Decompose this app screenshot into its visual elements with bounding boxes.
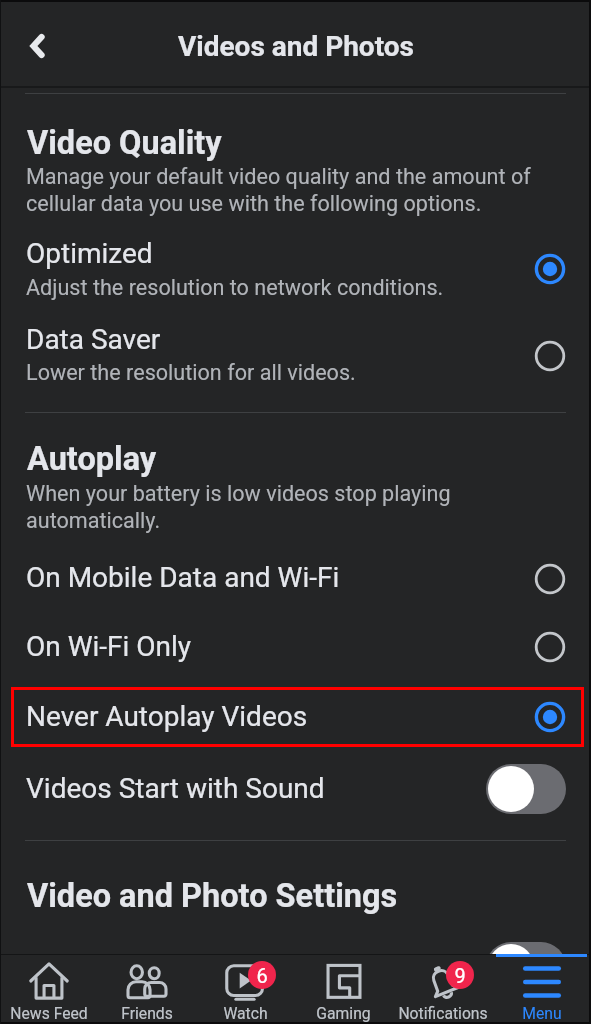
staticText: Videos and Photos <box>178 30 414 63</box>
staticText: 6 <box>256 964 268 987</box>
staticText: Video Quality <box>27 124 222 162</box>
button[interactable]: Option <box>533 562 567 596</box>
staticText: Lower the resolution for all videos. <box>26 360 356 385</box>
staticText: Optimized <box>26 237 153 270</box>
staticText: 9 <box>454 964 466 987</box>
staticText: Gaming <box>316 1004 371 1022</box>
staticText: Data Saver <box>26 323 161 356</box>
staticText: Watch <box>223 1004 268 1022</box>
button[interactable] <box>25 234 566 300</box>
staticText: On Mobile Data and Wi-Fi <box>26 561 340 594</box>
staticText: Autoplay <box>27 440 157 478</box>
staticText: Adjust the resolution to network conditi… <box>26 275 444 300</box>
button[interactable]: News Feed <box>0 954 98 1024</box>
button[interactable]: Back <box>16 24 60 68</box>
staticText: Manage your default video quality and th… <box>26 164 531 216</box>
button[interactable]: Gaming <box>294 954 393 1024</box>
button[interactable]: Toggle <box>486 764 566 814</box>
button[interactable]: Friends <box>98 954 196 1024</box>
staticText: Never Autoplay Videos <box>26 700 308 733</box>
staticText: News Feed <box>10 1004 88 1022</box>
button[interactable]: Menu <box>492 954 591 1024</box>
button[interactable]: Option <box>533 339 567 373</box>
staticText: Videos Start with Sound <box>26 772 325 805</box>
button[interactable] <box>0 683 591 751</box>
button[interactable] <box>0 613 591 681</box>
button[interactable]: Selected option <box>533 252 567 286</box>
button[interactable] <box>25 320 566 386</box>
button[interactable]: Option <box>533 630 567 664</box>
button[interactable]: 6 <box>196 954 294 1024</box>
button[interactable]: Selected option <box>533 700 567 734</box>
staticText: When your battery is low videos stop pla… <box>26 481 451 533</box>
staticText: Friends <box>121 1004 173 1022</box>
button[interactable]: Toggle <box>486 942 566 992</box>
button[interactable]: 9 <box>393 954 492 1024</box>
button[interactable] <box>0 755 591 823</box>
button[interactable] <box>0 545 591 613</box>
staticText: Notifications <box>398 1004 488 1022</box>
staticText: Menu <box>522 1004 562 1022</box>
staticText: On Wi-Fi Only <box>26 630 192 663</box>
staticText: Video and Photo Settings <box>27 877 398 915</box>
